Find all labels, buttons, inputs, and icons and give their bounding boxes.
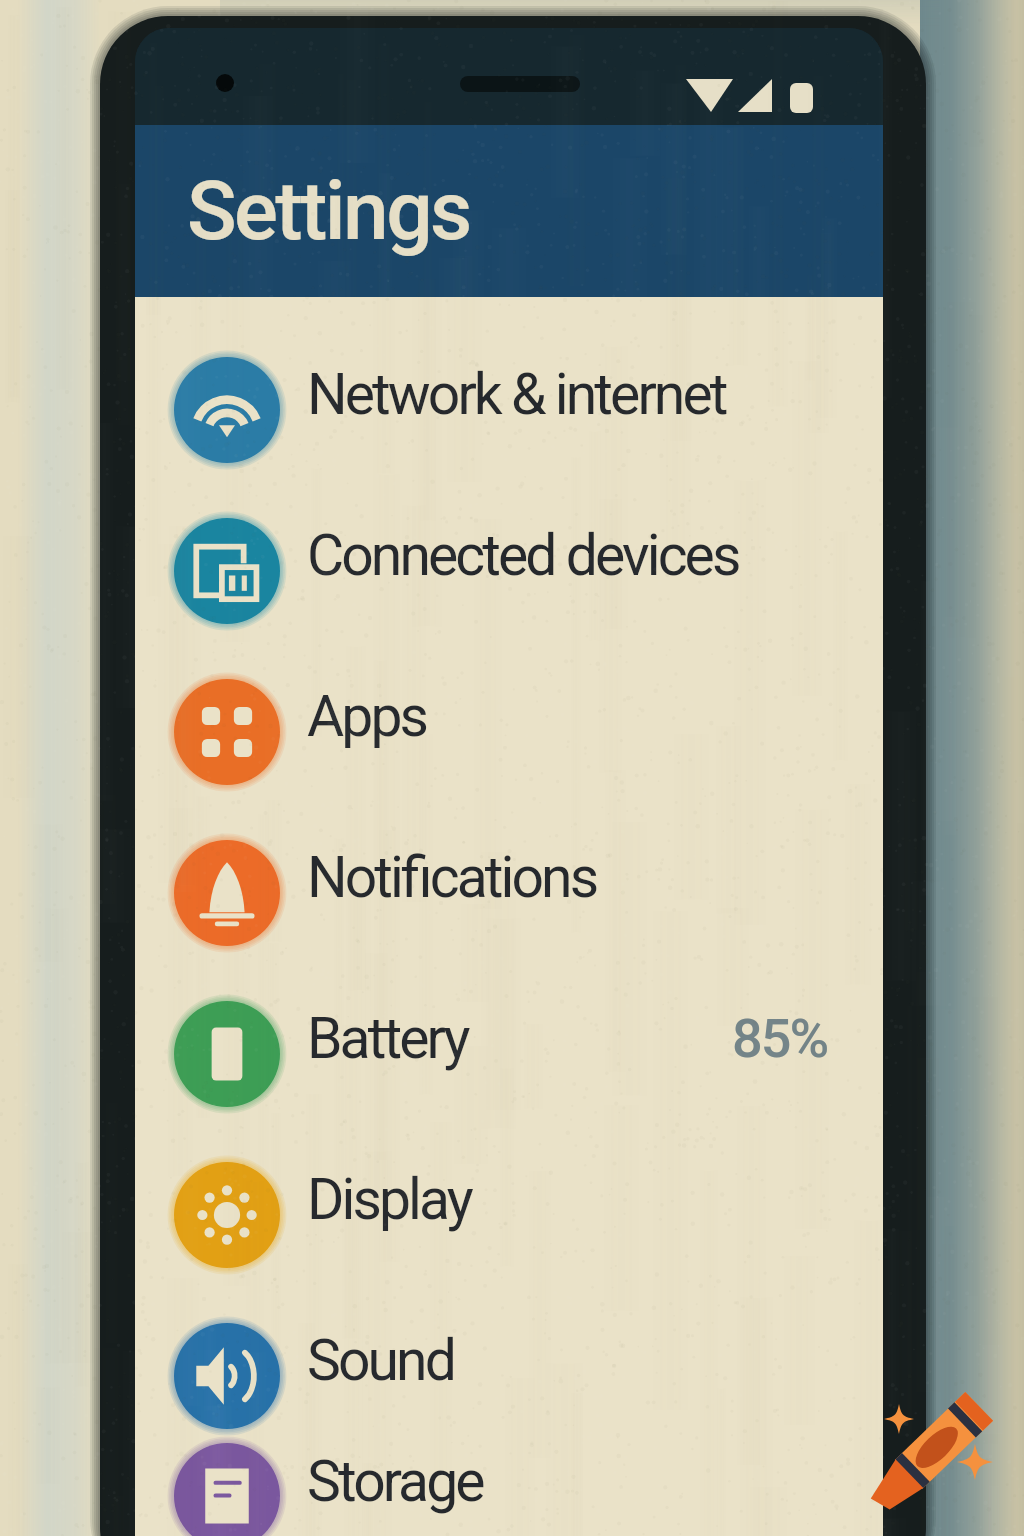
button[interactable]: Battery xyxy=(135,973,883,1134)
staticText: Sound xyxy=(307,1327,454,1394)
button[interactable]: Apps xyxy=(135,651,883,812)
staticText: Storage xyxy=(307,1448,483,1515)
button[interactable]: Display xyxy=(135,1134,883,1295)
staticText: Connected devices xyxy=(307,522,739,589)
staticText: Network & internet xyxy=(307,361,726,428)
staticText: Settings xyxy=(187,163,470,259)
button[interactable]: Sound xyxy=(135,1295,883,1456)
button[interactable]: Storage xyxy=(135,1456,883,1536)
button[interactable]: Connected devices xyxy=(135,490,883,651)
staticText: Battery xyxy=(307,1005,468,1072)
button[interactable]: Notifications xyxy=(135,812,883,973)
staticText: Display xyxy=(307,1166,471,1233)
other: Wi-Fi, signal and battery status xyxy=(135,28,883,125)
staticText: 85% xyxy=(732,1007,828,1070)
button[interactable]: Network & internet xyxy=(135,329,883,490)
staticText: Apps xyxy=(307,683,427,750)
staticText: Notifications xyxy=(307,844,597,911)
